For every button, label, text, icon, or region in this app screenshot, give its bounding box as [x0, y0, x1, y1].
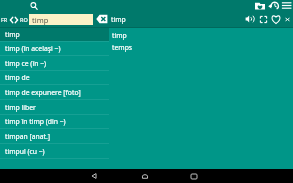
button[interactable]: timpul (cu ~) — [0, 144, 109, 159]
button[interactable]: timpan [anat.] — [0, 129, 109, 144]
button[interactable]: Fullscreen — [259, 15, 268, 24]
button[interactable]: Pronounce — [245, 14, 255, 24]
staticText: timpan [anat.] — [5, 132, 51, 141]
button[interactable]: Add to favorites — [271, 14, 281, 24]
staticText: FR — [1, 16, 8, 23]
staticText: RO — [20, 16, 28, 23]
staticText: timp — [32, 15, 49, 25]
staticText: timp — [112, 31, 127, 40]
button[interactable]: Recent apps — [178, 169, 210, 183]
staticText: timp (în acelaşi ~) — [5, 44, 61, 53]
staticText: timp liber — [5, 103, 36, 112]
staticText: timp în timp (din ~) — [5, 117, 66, 126]
staticText: timp ce (în ~) — [5, 59, 47, 68]
button[interactable]: Home — [129, 169, 161, 183]
button[interactable]: timp ce (în ~) — [0, 56, 109, 71]
button[interactable]: Clear text — [96, 14, 108, 24]
button[interactable]: Favorites — [255, 2, 265, 10]
staticText: temps — [112, 43, 133, 52]
button[interactable]: FR — [1, 14, 28, 25]
button[interactable]: Search — [30, 2, 38, 10]
button[interactable]: timp — [0, 27, 109, 42]
button[interactable]: History — [268, 1, 279, 10]
button[interactable]: timp — [29, 14, 93, 25]
button[interactable]: timp în timp (din ~) — [0, 114, 109, 129]
button[interactable]: Close — [284, 16, 291, 23]
staticText: timp de — [5, 73, 30, 82]
button[interactable]: timp (în acelaşi ~) — [0, 41, 109, 56]
staticText: timp de expunere [foto] — [5, 88, 81, 97]
staticText: timp — [111, 15, 126, 24]
staticText: timp — [5, 30, 20, 39]
button[interactable]: Back — [78, 169, 110, 183]
button[interactable]: timp de expunere [foto] — [0, 85, 109, 100]
staticText: timpul (cu ~) — [5, 147, 45, 156]
button[interactable]: timp de — [0, 70, 109, 85]
button[interactable]: Menu — [281, 1, 292, 10]
button[interactable]: timp liber — [0, 100, 109, 115]
